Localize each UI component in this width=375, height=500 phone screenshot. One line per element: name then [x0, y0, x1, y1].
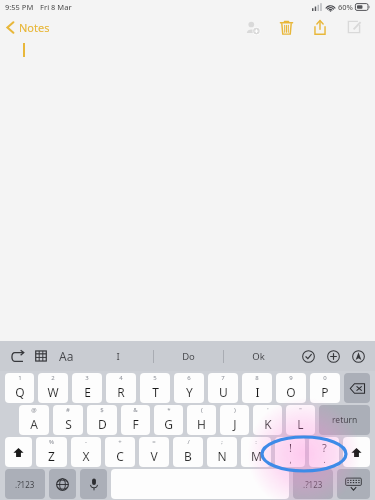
button[interactable]: 6: [174, 373, 204, 403]
staticText: (: [201, 406, 203, 414]
button[interactable]: 0: [310, 373, 340, 403]
button[interactable]: Add People: [239, 14, 265, 40]
button[interactable]: Undo: [7, 346, 27, 366]
button[interactable]: Change keyboard language: [49, 469, 76, 499]
staticText: U: [219, 384, 228, 400]
button[interactable]: :: [241, 437, 271, 467]
button[interactable]: ?: [309, 437, 339, 467]
button[interactable]: Shift: [343, 437, 370, 467]
staticText: %: [49, 438, 54, 446]
button[interactable]: return: [319, 405, 370, 435]
staticText: H: [197, 416, 206, 432]
button[interactable]: Delete: [273, 14, 299, 40]
staticText: O: [286, 384, 296, 400]
button[interactable]: New Note: [341, 14, 367, 40]
button[interactable]: ): [220, 405, 249, 435]
staticText: X: [82, 448, 90, 464]
staticText: /: [187, 438, 190, 446]
staticText: 7: [221, 374, 225, 382]
staticText: ': [267, 406, 269, 414]
staticText: 1: [18, 374, 22, 382]
button[interactable]: 7: [208, 373, 238, 403]
staticText: #: [66, 406, 70, 414]
button[interactable]: #: [53, 405, 83, 435]
staticText: 4: [119, 374, 123, 382]
staticText: !: [289, 440, 292, 455]
button[interactable]: Notes: [6, 20, 50, 35]
button[interactable]: 5: [140, 373, 170, 403]
button[interactable]: -: [71, 437, 101, 467]
button[interactable]: I: [83, 341, 153, 371]
staticText: +: [118, 438, 122, 446]
staticText: I: [116, 350, 120, 363]
staticText: 60%: [338, 2, 353, 12]
staticText: 8: [255, 374, 259, 382]
button[interactable]: +: [105, 437, 135, 467]
staticText: F: [132, 416, 139, 432]
button[interactable]: .?123: [5, 469, 45, 499]
staticText: I: [255, 384, 260, 400]
staticText: G: [164, 416, 173, 432]
staticText: .?123: [15, 479, 35, 490]
staticText: R: [117, 384, 125, 400]
button[interactable]: =: [139, 437, 169, 467]
staticText: *: [167, 406, 171, 414]
staticText: Notes: [19, 20, 50, 35]
staticText: .?123: [303, 479, 323, 490]
staticText: ): [234, 406, 236, 414]
staticText: .: [323, 454, 326, 465]
staticText: N: [217, 448, 227, 464]
button[interactable]: Backspace: [344, 373, 370, 403]
button[interactable]: Space: [111, 469, 289, 499]
staticText: 9: [289, 374, 293, 382]
staticText: S: [65, 416, 72, 432]
staticText: A: [30, 416, 38, 432]
staticText: 9:55 PM: [5, 2, 34, 12]
button[interactable]: .?123: [293, 469, 333, 499]
button[interactable]: 1: [5, 373, 34, 403]
button[interactable]: Markup: [348, 346, 368, 366]
button[interactable]: 9: [276, 373, 306, 403]
button[interactable]: Dictation: [80, 469, 107, 499]
staticText: L: [297, 416, 304, 432]
button[interactable]: Insert table: [31, 346, 51, 366]
button[interactable]: 8: [242, 373, 272, 403]
button[interactable]: @: [19, 405, 49, 435]
staticText: @: [31, 406, 37, 414]
staticText: Ok: [252, 350, 265, 363]
button[interactable]: *: [154, 405, 183, 435]
button[interactable]: Add attachment: [323, 346, 343, 366]
button[interactable]: /: [173, 437, 203, 467]
staticText: J: [233, 416, 237, 432]
button[interactable]: !: [275, 437, 305, 467]
staticText: $: [100, 406, 104, 414]
staticText: ,: [289, 454, 292, 465]
staticText: C: [116, 448, 124, 464]
staticText: ;: [221, 438, 223, 446]
button[interactable]: Aa: [55, 345, 77, 367]
button[interactable]: Hide keyboard: [337, 469, 370, 499]
button[interactable]: Checklist: [298, 346, 318, 366]
button[interactable]: Ok: [224, 341, 293, 371]
staticText: :: [255, 438, 257, 446]
staticText: P: [321, 384, 329, 400]
button[interactable]: $: [87, 405, 117, 435]
staticText: -: [85, 438, 87, 446]
staticText: 0: [323, 374, 327, 382]
button[interactable]: (: [187, 405, 216, 435]
button[interactable]: Shift: [5, 437, 32, 467]
button[interactable]: Do: [154, 341, 223, 371]
staticText: return: [332, 414, 358, 426]
button[interactable]: 3: [72, 373, 102, 403]
button[interactable]: ': [253, 405, 282, 435]
staticText: =: [152, 438, 156, 446]
staticText: Aa: [59, 348, 74, 364]
staticText: Y: [186, 384, 193, 400]
button[interactable]: 2: [38, 373, 68, 403]
button[interactable]: ": [286, 405, 315, 435]
button[interactable]: 4: [106, 373, 136, 403]
button[interactable]: %: [36, 437, 67, 467]
button[interactable]: Share: [307, 14, 333, 40]
button[interactable]: &: [121, 405, 150, 435]
button[interactable]: ;: [207, 437, 237, 467]
